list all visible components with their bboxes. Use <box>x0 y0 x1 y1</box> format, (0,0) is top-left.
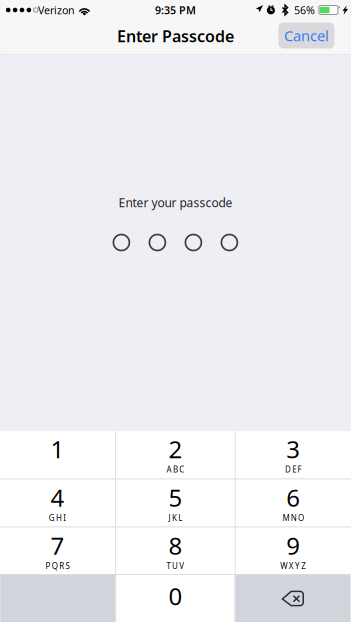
staticText: MNO <box>282 513 304 523</box>
button[interactable]: 4 <box>0 479 115 526</box>
staticText: Enter your passcode <box>118 194 232 210</box>
staticText: ABC <box>167 464 184 475</box>
staticText: 9 <box>286 530 300 561</box>
staticText: 8 <box>168 530 182 561</box>
button[interactable]: 0 <box>116 575 234 622</box>
staticText: 5 <box>168 482 182 513</box>
staticText: Verizon <box>38 3 75 17</box>
staticText: TUV <box>167 561 184 571</box>
staticText: 4 <box>50 482 64 513</box>
button[interactable]: 6 <box>236 479 351 526</box>
staticText: GHI <box>49 513 66 523</box>
staticText: 0 <box>168 580 182 612</box>
button[interactable]: 8 <box>116 527 235 574</box>
staticText: 7 <box>50 530 64 561</box>
button[interactable]: Cancel <box>278 22 334 48</box>
staticText: JKL <box>169 513 182 523</box>
button[interactable]: Delete <box>235 575 350 622</box>
staticText: WXYZ <box>280 561 306 571</box>
button[interactable]: 7 <box>0 527 115 574</box>
button[interactable]: 1 <box>0 431 115 478</box>
staticText: Enter Passcode <box>117 25 234 47</box>
staticText: Cancel <box>284 26 329 45</box>
staticText: 56% <box>294 3 315 17</box>
staticText: 6 <box>286 482 300 513</box>
staticText: 9:35 PM <box>155 3 196 17</box>
button[interactable]: 9 <box>236 527 351 574</box>
button[interactable]: 2 <box>116 431 235 478</box>
staticText: 3 <box>286 433 300 465</box>
staticText: 2 <box>168 433 182 465</box>
button[interactable]: 5 <box>116 479 235 526</box>
staticText: DEF <box>285 464 302 475</box>
button[interactable]: 3 <box>236 431 351 478</box>
staticText: 1 <box>50 433 64 465</box>
staticText: PQRS <box>46 561 69 571</box>
